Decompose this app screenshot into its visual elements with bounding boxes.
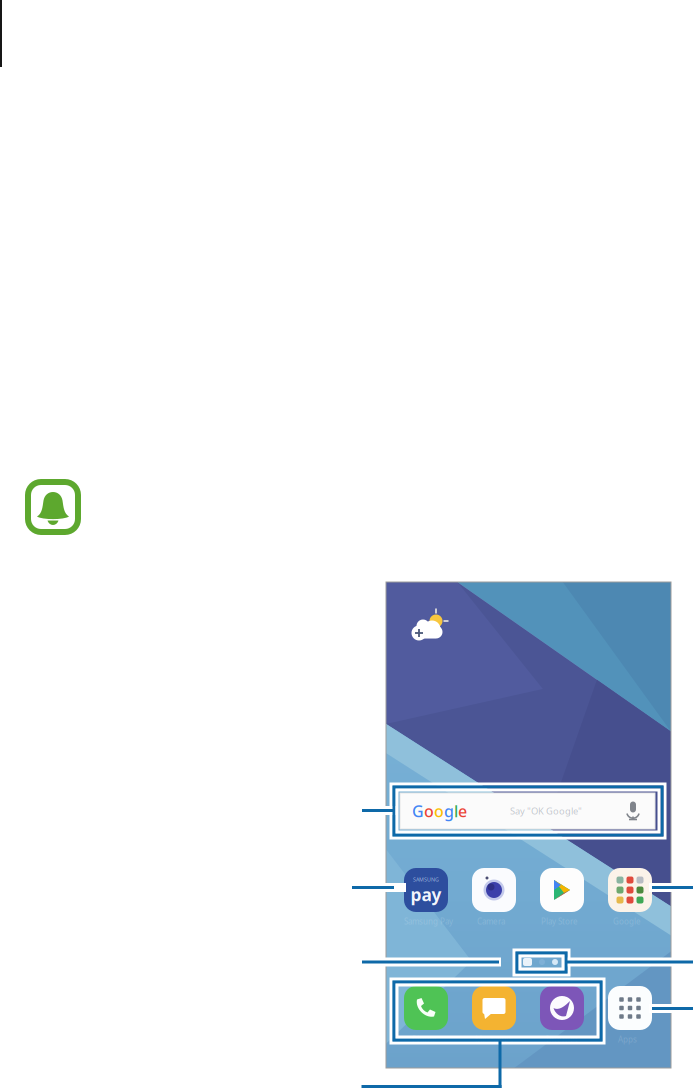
staticText: Phone xyxy=(412,1034,437,1045)
staticText: g xyxy=(444,800,454,822)
staticText: e xyxy=(458,800,467,822)
button[interactable] xyxy=(608,986,652,1030)
staticText: pay xyxy=(410,883,441,906)
button[interactable]: G xyxy=(400,793,655,829)
button[interactable] xyxy=(472,868,516,912)
staticText: l xyxy=(454,800,458,822)
staticText: o xyxy=(424,800,434,822)
staticText: Say "OK Google" xyxy=(510,805,582,817)
button[interactable] xyxy=(608,868,652,912)
staticText: Play Store xyxy=(541,916,578,927)
staticText: o xyxy=(434,800,444,822)
staticText: Samsung Pay xyxy=(404,916,453,927)
staticText: Camera xyxy=(477,916,505,927)
button[interactable] xyxy=(540,986,584,1030)
button[interactable] xyxy=(404,986,448,1030)
staticText: Messages xyxy=(475,1034,513,1045)
staticText: SAMSUNG xyxy=(413,876,439,883)
staticText: Apps xyxy=(618,1034,637,1045)
button[interactable] xyxy=(472,986,516,1030)
button[interactable] xyxy=(540,868,584,912)
staticText: Google xyxy=(613,916,641,927)
button[interactable]: SAMSUNG xyxy=(404,868,448,912)
staticText: G xyxy=(412,800,424,822)
staticText: Internet xyxy=(546,1034,578,1045)
